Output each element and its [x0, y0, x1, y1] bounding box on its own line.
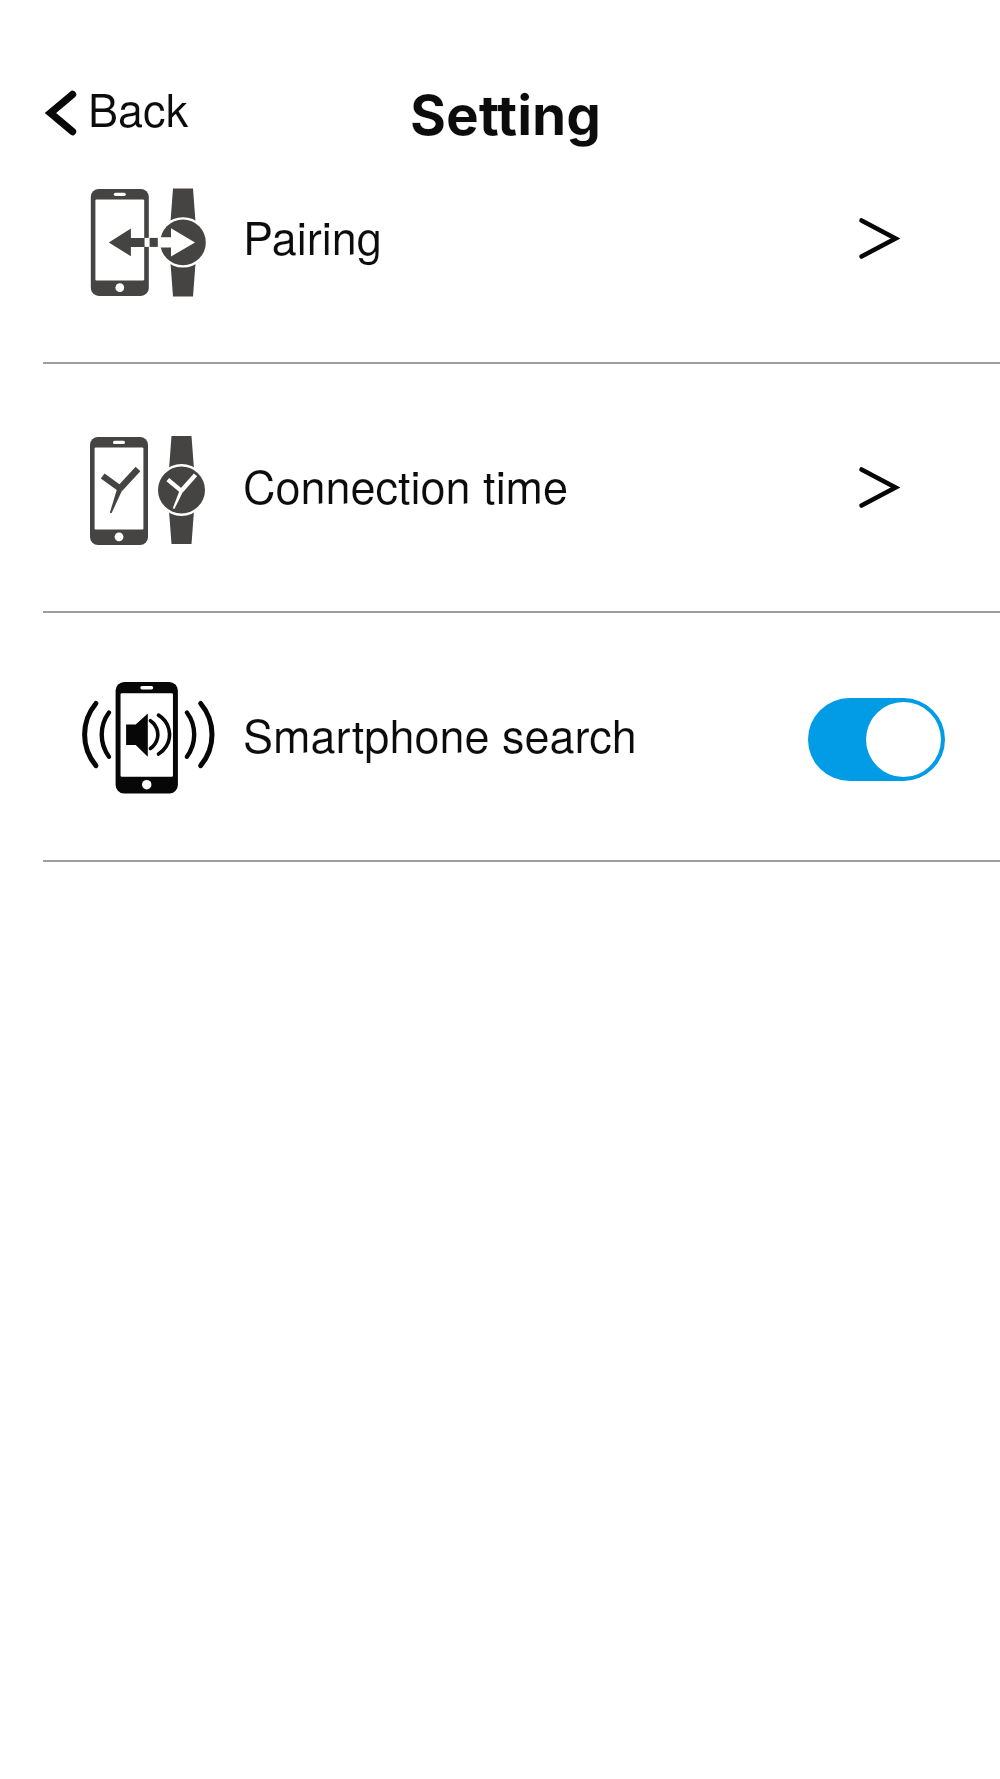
- staticText: Smartphone search: [243, 701, 637, 765]
- staticText: Connection time: [243, 452, 569, 516]
- button[interactable]: Open Connection time: [843, 451, 914, 524]
- staticText: Back: [88, 75, 189, 139]
- button[interactable]: Connection time: [0, 364, 1000, 611]
- button[interactable]: Smartphone search toggle, on: [808, 698, 945, 781]
- button[interactable]: Open Pairing: [843, 202, 914, 275]
- staticText: Setting: [410, 82, 602, 149]
- staticText: Pairing: [243, 203, 382, 267]
- button[interactable]: Pairing: [0, 115, 1000, 362]
- button[interactable]: Back: [37, 71, 198, 155]
- button[interactable]: Smartphone search: [0, 613, 1000, 860]
